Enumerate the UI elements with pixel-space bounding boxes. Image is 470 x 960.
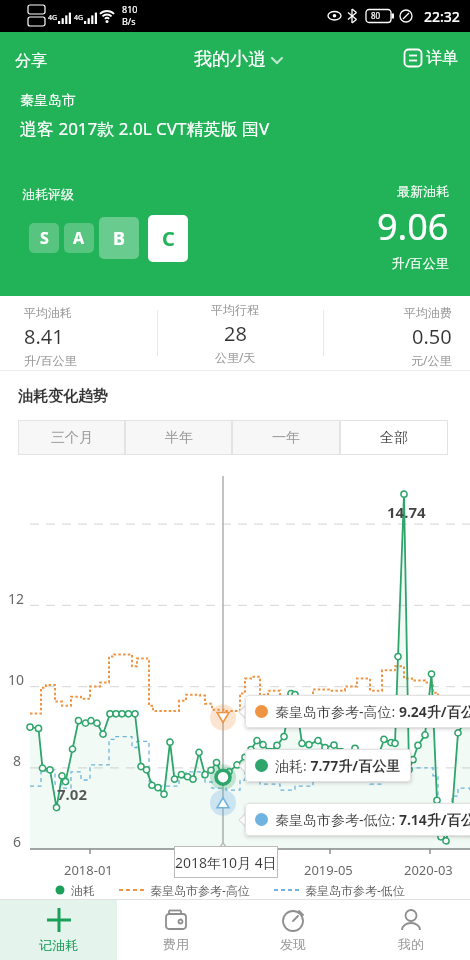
- staticText: 我的小逍: [194, 48, 266, 71]
- staticText: 油耗: 7.77升/百公里: [275, 756, 401, 775]
- staticText: 10: [8, 670, 25, 689]
- button[interactable]: 一年: [232, 420, 340, 455]
- staticText: 秦皇岛市参考-高位: [150, 882, 250, 898]
- staticText: 半年: [165, 429, 193, 447]
- staticText: 2019-05: [304, 861, 353, 879]
- staticText: 平均行程: [211, 302, 259, 317]
- staticText: 三个月: [51, 429, 93, 447]
- button[interactable]: 详单: [404, 48, 458, 68]
- staticText: A: [73, 227, 85, 249]
- staticText: 费用: [163, 936, 189, 952]
- staticText: B/s: [122, 15, 136, 27]
- staticText: 8: [13, 751, 22, 770]
- button[interactable]: 发现: [234, 900, 352, 960]
- staticText: 8.41: [24, 323, 64, 350]
- staticText: S: [40, 227, 49, 249]
- staticText: 9.06: [377, 202, 449, 251]
- staticText: B: [113, 226, 125, 251]
- staticText: 平均油耗: [24, 305, 72, 320]
- staticText: 28: [224, 320, 247, 347]
- staticText: 秦皇岛市: [20, 92, 76, 110]
- staticText: 14.74: [387, 502, 426, 522]
- staticText: 0.50: [412, 323, 452, 350]
- staticText: 秦皇岛市参考-低位: [305, 882, 405, 898]
- staticText: 秦皇岛市参考-高位: 9.24升/百公里: [275, 702, 470, 721]
- button[interactable]: 半年: [125, 420, 232, 455]
- staticText: 平均油费: [404, 305, 452, 320]
- button[interactable]: 我的: [352, 900, 470, 960]
- staticText: 2018年10月 4日: [175, 853, 277, 872]
- staticText: 详单: [426, 48, 458, 68]
- staticText: 22:32: [424, 7, 460, 26]
- staticText: 升/百公里: [24, 352, 77, 368]
- staticText: 2020-03: [404, 861, 453, 879]
- staticText: 油耗变化趋势: [18, 387, 108, 406]
- staticText: 2018-01: [64, 861, 113, 879]
- staticText: 80: [371, 10, 381, 21]
- staticText: 810: [122, 3, 138, 15]
- staticText: 逍客 2017款 2.0L CVT精英版 国V: [20, 117, 270, 140]
- staticText: 7.02: [57, 784, 87, 804]
- button[interactable]: 费用: [117, 900, 234, 960]
- staticText: 一年: [272, 429, 300, 447]
- button[interactable]: 分享: [15, 51, 47, 71]
- button[interactable]: 我的小逍: [194, 48, 288, 71]
- staticText: 我的: [398, 936, 424, 952]
- staticText: 升/百公里: [392, 254, 449, 272]
- staticText: 4G: [48, 13, 58, 23]
- staticText: 元/公里: [411, 352, 452, 368]
- button[interactable]: 全部: [340, 420, 448, 455]
- staticText: 油耗评级: [22, 186, 74, 202]
- staticText: 记油耗: [39, 937, 78, 953]
- staticText: 发现: [280, 936, 306, 952]
- staticText: 6: [13, 832, 22, 851]
- staticText: 油耗: [71, 883, 95, 898]
- staticText: C: [162, 225, 175, 252]
- staticText: 最新油耗: [397, 183, 449, 199]
- button[interactable]: 三个月: [18, 420, 125, 455]
- staticText: 12: [8, 589, 25, 608]
- button[interactable]: 记油耗: [0, 900, 117, 960]
- staticText: 全部: [380, 429, 408, 447]
- staticText: 4G: [74, 13, 84, 23]
- staticText: 公里/天: [215, 349, 256, 365]
- staticText: 秦皇岛市参考-低位: 7.14升/百公里: [275, 810, 470, 829]
